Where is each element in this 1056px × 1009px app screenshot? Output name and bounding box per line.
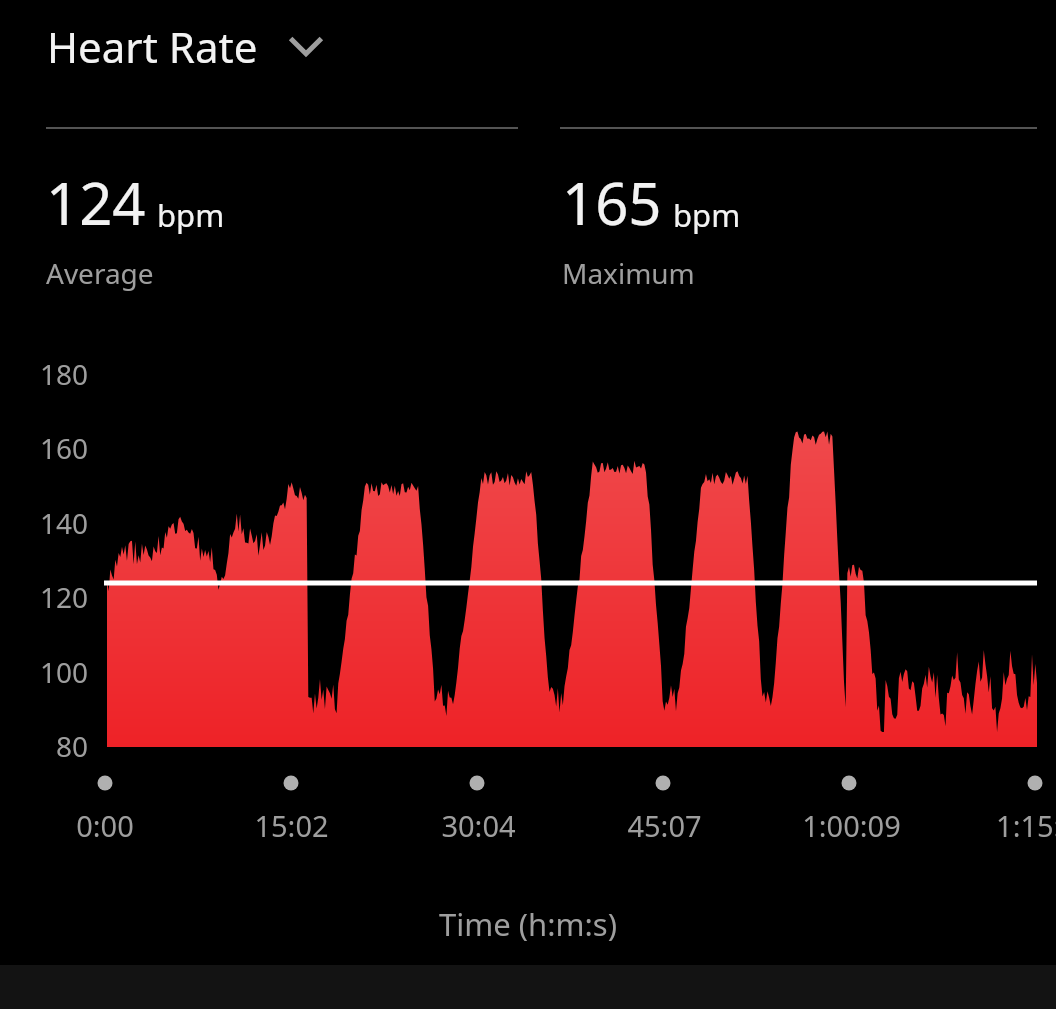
staticText: 180	[40, 355, 89, 393]
staticText: 120	[40, 578, 89, 616]
button[interactable]: 124	[46, 163, 225, 292]
staticText: Heart Rate	[47, 18, 258, 75]
staticText: 160	[40, 429, 89, 467]
staticText: 0:00	[76, 806, 134, 845]
button[interactable]: 165	[562, 163, 741, 292]
staticText: Maximum	[562, 254, 695, 292]
staticText: 30:04	[441, 806, 516, 845]
staticText: 80	[56, 727, 89, 765]
staticText: Time (h:m:s)	[439, 903, 617, 945]
staticText: bpm	[673, 194, 741, 236]
staticText: 124	[46, 163, 146, 242]
staticText: 1:00:09	[802, 806, 901, 845]
staticText: 45:07	[627, 806, 702, 845]
button[interactable]: Heart Rate	[47, 18, 328, 75]
staticText: 15:02	[254, 806, 329, 845]
staticText: 165	[562, 163, 662, 242]
other: Expand heart rate metric	[284, 25, 328, 69]
staticText: bpm	[157, 194, 225, 236]
staticText: 100	[40, 653, 89, 691]
staticText: Average	[46, 254, 154, 292]
staticText: 1:15:1	[996, 806, 1056, 845]
staticText: 140	[40, 504, 89, 542]
